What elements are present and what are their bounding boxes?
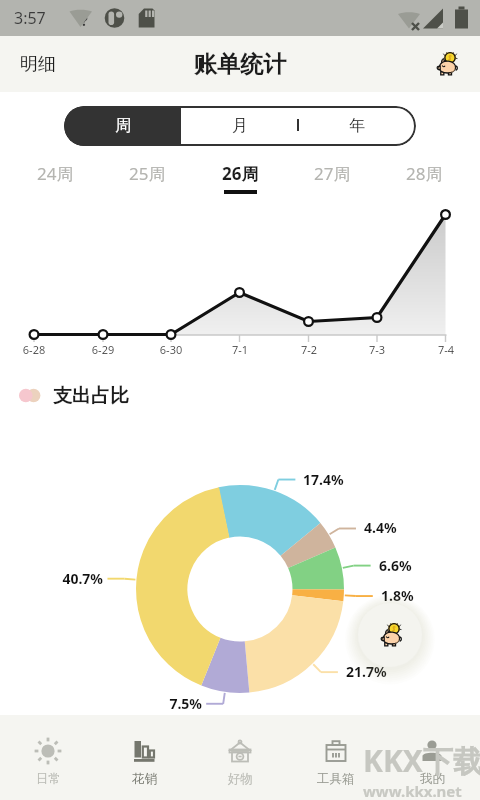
staticText: 7-1 bbox=[224, 342, 256, 357]
staticText: 7.5% bbox=[142, 694, 202, 713]
staticText: 6-29 bbox=[87, 342, 119, 357]
button[interactable]: 周 bbox=[64, 106, 181, 146]
staticText: 3:57 bbox=[14, 7, 46, 29]
button[interactable]: 月 bbox=[181, 106, 298, 146]
staticText: 4.4% bbox=[364, 518, 424, 537]
button[interactable]: Piggy bank bbox=[426, 44, 466, 84]
button[interactable]: 28周 bbox=[388, 159, 461, 188]
staticText: 账单统计 bbox=[194, 50, 286, 79]
staticText: 25周 bbox=[129, 162, 166, 185]
staticText: 17.4% bbox=[303, 470, 363, 489]
staticText: 明细 bbox=[20, 53, 56, 76]
button[interactable]: 工具箱 bbox=[288, 715, 384, 787]
staticText: 7-3 bbox=[361, 342, 393, 357]
staticText: 支出占比 bbox=[53, 384, 129, 408]
staticText: 40.7% bbox=[43, 569, 103, 588]
button[interactable]: 26周 bbox=[204, 159, 277, 197]
button[interactable]: 好物 bbox=[192, 715, 288, 787]
staticText: 1.8% bbox=[381, 586, 441, 605]
staticText: 24周 bbox=[37, 162, 74, 185]
staticText: ? bbox=[81, 11, 88, 30]
staticText: 工具箱 bbox=[317, 771, 355, 787]
staticText: 27周 bbox=[314, 162, 351, 185]
button[interactable]: 24周 bbox=[19, 159, 92, 188]
button[interactable]: 25周 bbox=[111, 159, 184, 188]
staticText: 7-2 bbox=[293, 342, 325, 357]
staticText: 月 bbox=[232, 116, 248, 136]
staticText: 21.7% bbox=[346, 662, 406, 681]
staticText: www.kkx.net bbox=[363, 781, 462, 800]
staticText: 28周 bbox=[406, 162, 443, 185]
staticText: 周 bbox=[115, 116, 131, 136]
staticText: 6.6% bbox=[379, 556, 439, 575]
staticText: 日常 bbox=[36, 771, 61, 787]
staticText: 7-4 bbox=[430, 342, 462, 357]
staticText: 我的 bbox=[420, 771, 445, 787]
staticText: 年 bbox=[349, 116, 365, 136]
button[interactable]: 年 bbox=[298, 106, 416, 146]
button[interactable]: 花销 bbox=[96, 715, 192, 787]
staticText: 6-30 bbox=[155, 342, 187, 357]
button[interactable]: 日常 bbox=[0, 715, 96, 787]
button[interactable]: Add record bbox=[358, 603, 422, 667]
staticText: 花销 bbox=[132, 771, 157, 787]
staticText: 好物 bbox=[228, 771, 253, 787]
button[interactable]: 27周 bbox=[296, 159, 369, 188]
staticText: 6-28 bbox=[18, 342, 50, 357]
button[interactable]: 明细 bbox=[0, 41, 76, 88]
button[interactable]: 我的 bbox=[384, 715, 480, 787]
staticText: 26周 bbox=[222, 162, 259, 185]
staticText: KKX下载 bbox=[363, 740, 480, 781]
